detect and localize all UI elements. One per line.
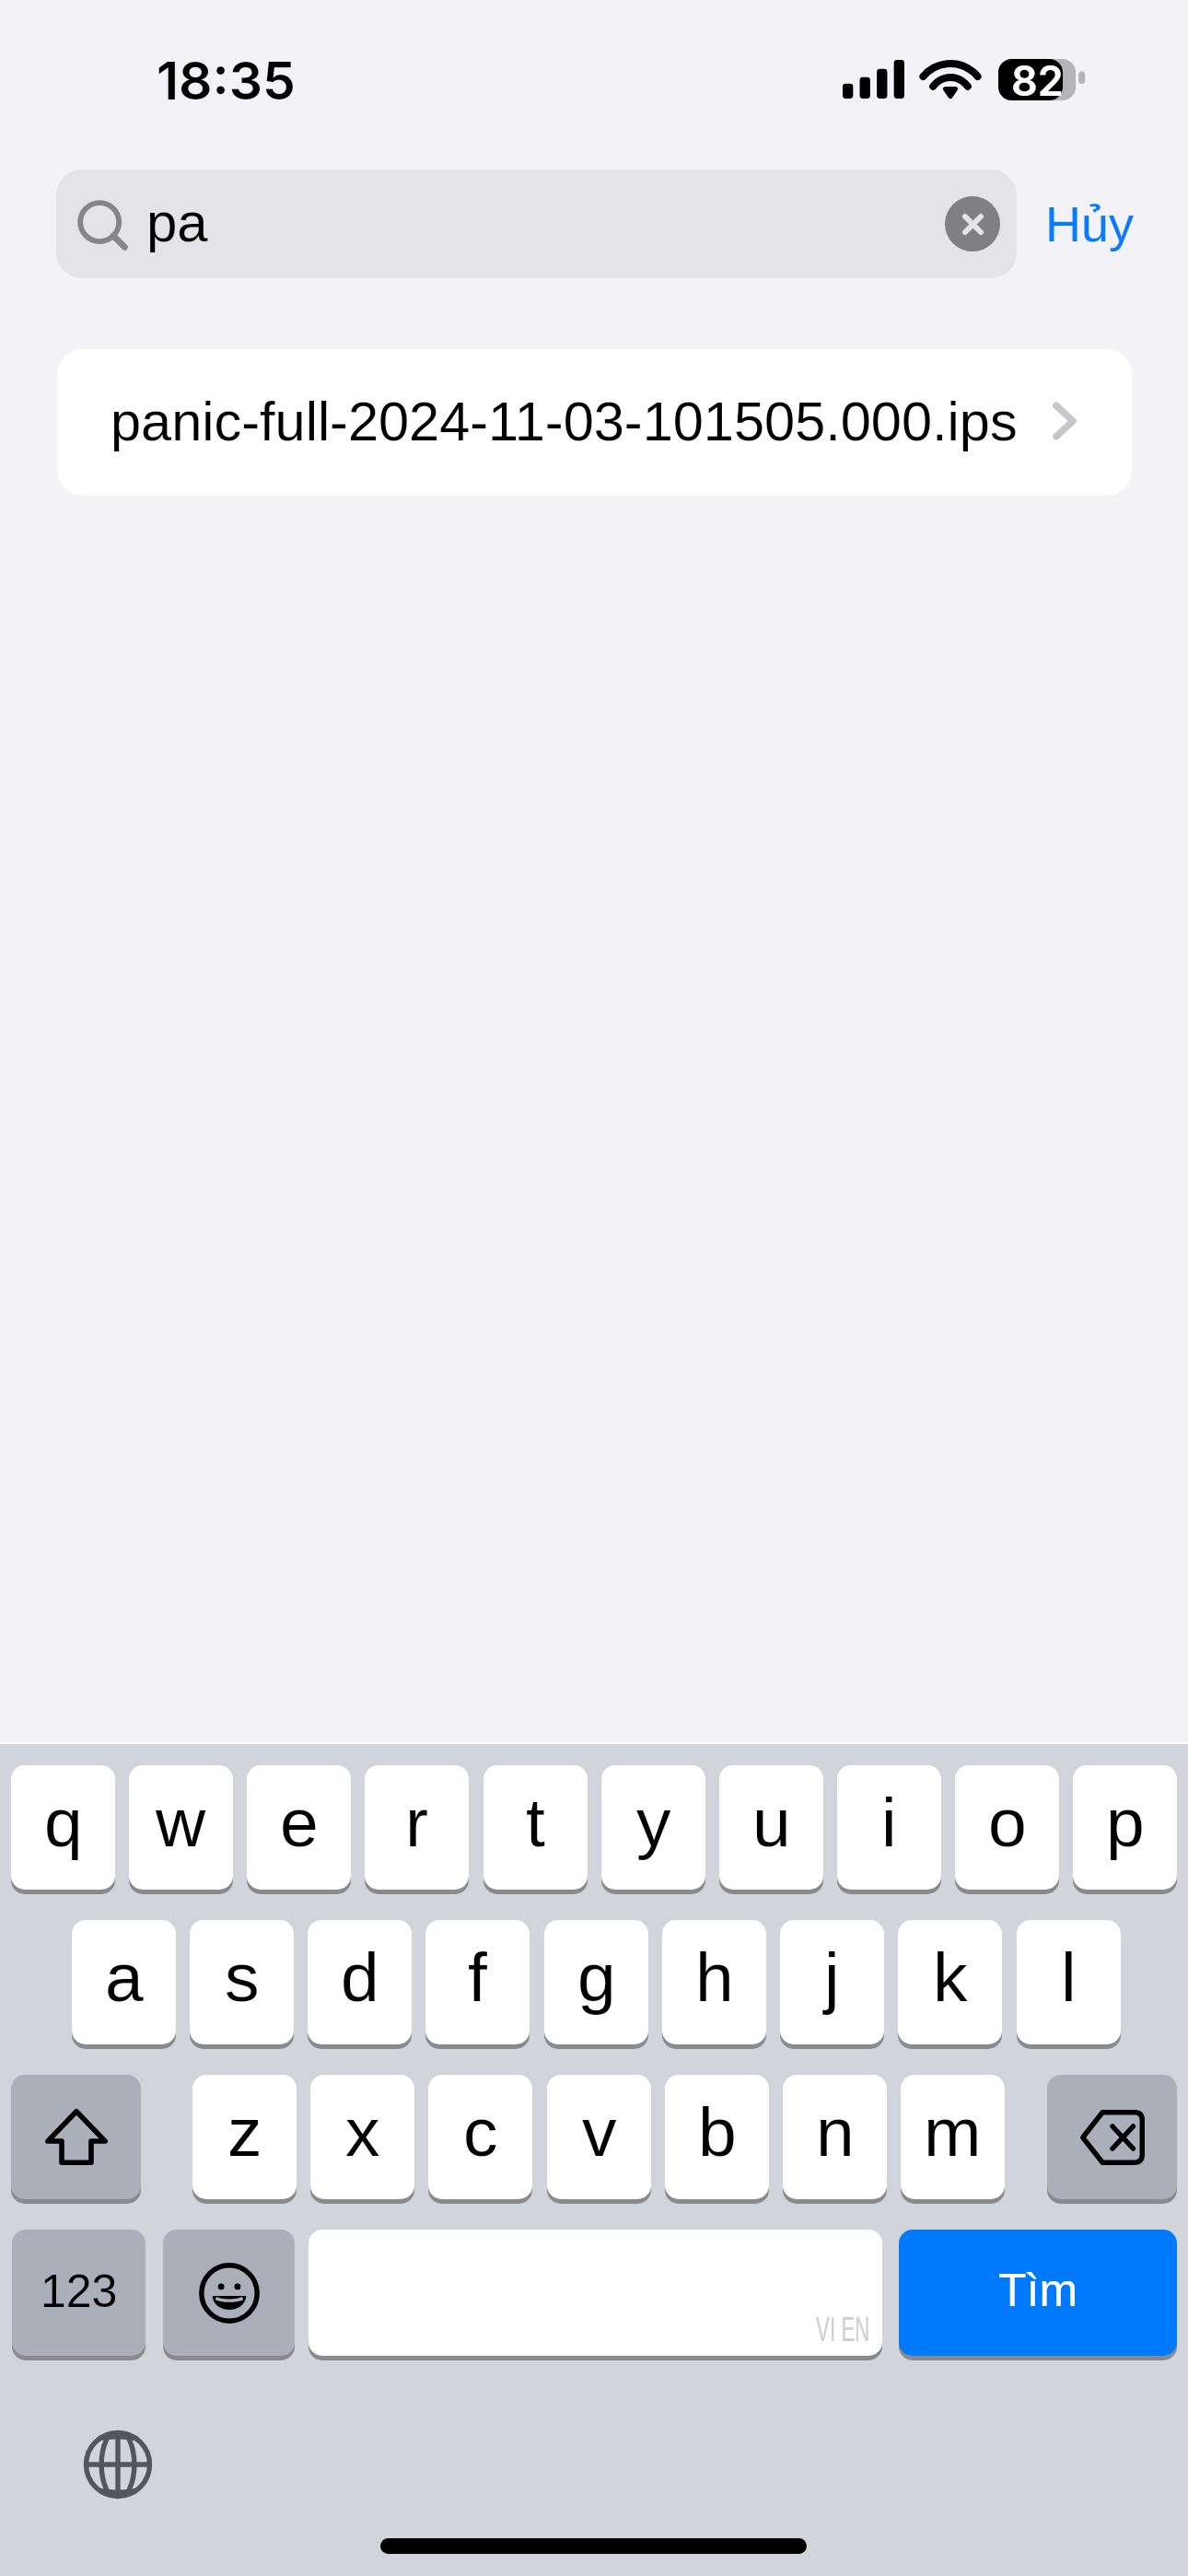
button[interactable]: Space (309, 2230, 882, 2356)
button[interactable]: r (365, 1765, 469, 1890)
button[interactable]: v (547, 2075, 651, 2199)
staticText: n (816, 2093, 855, 2171)
staticText: Hủy (1045, 196, 1135, 252)
button[interactable]: u (719, 1765, 823, 1890)
staticText: o (988, 1784, 1027, 1861)
staticText: t (526, 1784, 545, 1861)
staticText: panic-full-2024-11-03-101505.000.ips (111, 391, 1018, 451)
button[interactable]: Tìm (899, 2230, 1177, 2356)
staticText: Tìm (998, 2265, 1078, 2316)
staticText: z (227, 2093, 262, 2171)
staticText: u (752, 1784, 791, 1861)
button[interactable]: j (780, 1920, 884, 2044)
button[interactable]: k (898, 1920, 1002, 2044)
staticText: d (341, 1938, 379, 2016)
button[interactable]: Switch keyboard language (81, 2428, 155, 2501)
button[interactable]: g (544, 1920, 648, 2044)
staticText: v (582, 2093, 617, 2171)
button[interactable]: n (783, 2075, 887, 2199)
staticText: pa (146, 192, 208, 253)
button[interactable]: Emoji (163, 2230, 295, 2356)
button[interactable]: Backspace (1047, 2075, 1177, 2199)
staticText: f (468, 1938, 487, 2016)
button[interactable]: a (72, 1920, 176, 2044)
button[interactable]: p (1073, 1765, 1177, 1890)
staticText: l (1061, 1938, 1077, 2016)
staticText: q (44, 1784, 83, 1861)
button[interactable]: x (310, 2075, 414, 2199)
button[interactable]: h (662, 1920, 766, 2044)
staticText: k (933, 1938, 968, 2016)
button[interactable]: f (425, 1920, 530, 2044)
staticText: a (105, 1938, 144, 2016)
staticText: r (405, 1784, 428, 1861)
staticText: VI EN (816, 2311, 870, 2348)
button[interactable]: e (247, 1765, 351, 1890)
staticText: j (824, 1938, 840, 2016)
staticText: p (1106, 1784, 1145, 1861)
staticText: y (636, 1784, 671, 1861)
button[interactable]: i (837, 1765, 941, 1890)
staticText: h (695, 1938, 734, 2016)
button[interactable]: panic-full-2024-11-03-101505.000.ips (57, 349, 1132, 496)
button[interactable]: z (192, 2075, 297, 2199)
staticText: w (156, 1784, 206, 1861)
button[interactable]: pa (56, 170, 1017, 278)
button[interactable]: y (601, 1765, 705, 1890)
button[interactable]: l (1017, 1920, 1121, 2044)
button[interactable]: Hủy (1037, 170, 1143, 278)
staticText: 82 (1011, 55, 1064, 97)
button[interactable]: Clear search text (945, 196, 1000, 252)
button[interactable]: c (428, 2075, 532, 2199)
staticText: x (345, 2093, 380, 2171)
staticText: b (698, 2093, 737, 2171)
button[interactable]: s (190, 1920, 294, 2044)
button[interactable]: b (665, 2075, 769, 2199)
button[interactable]: Shift (11, 2075, 141, 2199)
button[interactable]: q (11, 1765, 115, 1890)
button[interactable]: d (308, 1920, 412, 2044)
staticText: s (225, 1938, 260, 2016)
staticText: 18:35 (157, 49, 296, 112)
staticText: e (280, 1784, 319, 1861)
button[interactable]: o (955, 1765, 1059, 1890)
staticText: m (924, 2093, 982, 2171)
button[interactable]: m (901, 2075, 1005, 2199)
button[interactable]: t (483, 1765, 588, 1890)
staticText: i (881, 1784, 897, 1861)
button[interactable]: w (129, 1765, 233, 1890)
staticText: c (463, 2093, 498, 2171)
staticText: g (577, 1938, 616, 2016)
staticText: 123 (41, 2266, 118, 2317)
button[interactable]: 123 (12, 2230, 146, 2356)
